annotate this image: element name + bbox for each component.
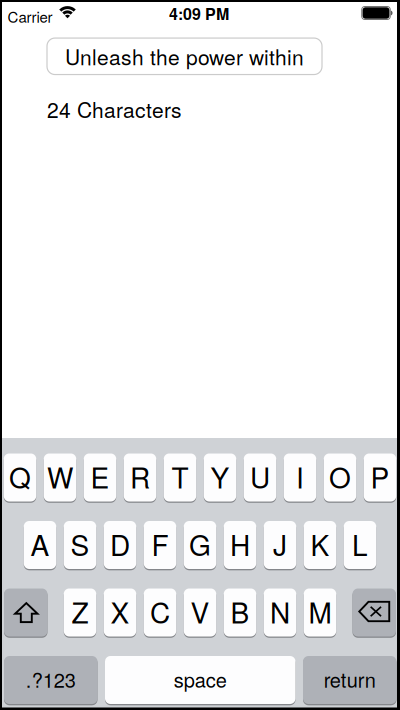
staticText: P [370,456,389,497]
button[interactable]: Y [204,452,236,502]
staticText: E [90,456,109,497]
staticText: F [151,524,168,564]
staticText: T [171,456,188,497]
staticText: W [47,456,73,497]
staticText: R [130,456,150,497]
button[interactable]: R [124,452,156,502]
staticText: J [273,524,287,564]
button[interactable]: H [224,520,256,570]
staticText: S [70,524,89,564]
button[interactable]: L [344,520,376,570]
button[interactable]: Text field [47,38,322,74]
button[interactable]: .?123 [4,655,97,705]
button[interactable]: Z [64,587,96,637]
button[interactable]: G [184,520,216,570]
button[interactable]: Q [4,452,36,502]
staticText: 4:09 PM [169,2,229,25]
staticText: L [352,524,368,564]
staticText: .?123 [26,665,76,693]
staticText: A [30,524,49,564]
button[interactable]: W [44,452,76,502]
staticText: U [250,456,270,497]
staticText: Z [71,591,88,632]
button[interactable]: Delete [352,587,396,637]
button[interactable]: return [303,655,396,705]
staticText: N [270,591,290,632]
staticText: Q [9,456,31,497]
staticText: 24 Characters [47,94,182,124]
staticText: H [230,524,250,564]
staticText: space [174,665,227,693]
staticText: C [150,591,170,632]
staticText: V [190,591,209,632]
staticText: I [296,456,304,497]
button[interactable]: X [104,587,136,637]
button[interactable]: J [264,520,296,570]
staticText: K [310,524,329,564]
button[interactable]: N [264,587,296,637]
button[interactable]: A [24,520,56,570]
button[interactable]: S [64,520,96,570]
staticText: G [189,524,211,564]
button[interactable]: M [304,587,336,637]
button[interactable]: F [144,520,176,570]
button[interactable]: O [324,452,356,502]
button[interactable]: K [304,520,336,570]
button[interactable]: B [224,587,256,637]
staticText: M [308,591,331,632]
button[interactable]: I [284,452,316,502]
button[interactable]: T [164,452,196,502]
button[interactable]: U [244,452,276,502]
staticText: return [324,665,376,693]
staticText: Unleash the power within [65,41,304,71]
button[interactable]: D [104,520,136,570]
staticText: Carrier [7,5,52,27]
staticText: B [230,591,249,632]
staticText: D [110,524,130,564]
button[interactable]: Shift [4,587,47,637]
staticText: Y [210,456,229,497]
button[interactable]: P [364,452,396,502]
button[interactable]: space [105,655,295,705]
button[interactable]: C [144,587,176,637]
button[interactable]: V [184,587,216,637]
staticText: O [329,456,351,497]
button[interactable]: E [84,452,116,502]
staticText: X [110,591,129,632]
